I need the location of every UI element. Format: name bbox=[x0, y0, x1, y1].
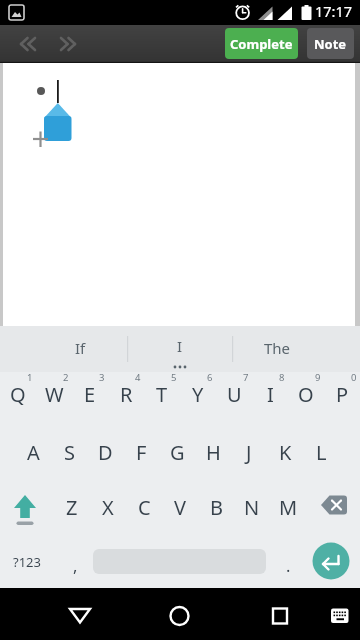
button[interactable]: , bbox=[45, 550, 105, 580]
button[interactable]: ?123 bbox=[0, 547, 57, 577]
staticText: The bbox=[264, 338, 291, 358]
button[interactable]: M bbox=[258, 492, 318, 522]
button[interactable]: J bbox=[219, 437, 279, 467]
button[interactable] bbox=[160, 594, 200, 634]
button[interactable]: Z bbox=[42, 492, 102, 522]
staticText: 8 bbox=[279, 371, 285, 384]
button[interactable]: F bbox=[111, 437, 171, 467]
staticText: S bbox=[64, 439, 75, 466]
button[interactable] bbox=[315, 489, 355, 529]
staticText: U bbox=[227, 381, 242, 408]
button[interactable] bbox=[260, 594, 300, 634]
button[interactable]: N bbox=[222, 492, 282, 522]
staticText: X bbox=[102, 494, 114, 521]
staticText: 0 bbox=[351, 371, 357, 384]
staticText: G bbox=[170, 439, 185, 466]
button[interactable]: B bbox=[186, 492, 246, 522]
staticText: C bbox=[138, 494, 151, 521]
staticText: I bbox=[267, 381, 274, 408]
button[interactable]: I bbox=[150, 331, 210, 361]
button[interactable]: S bbox=[39, 437, 99, 467]
button[interactable]: E bbox=[60, 379, 120, 409]
staticText: A bbox=[27, 439, 40, 466]
staticText: P bbox=[336, 381, 349, 408]
button[interactable]: L bbox=[291, 437, 351, 467]
staticText: I bbox=[177, 336, 183, 356]
button[interactable]: C bbox=[114, 492, 174, 522]
staticText: 7 bbox=[243, 371, 249, 384]
staticText: , bbox=[73, 554, 78, 576]
button[interactable]: Q bbox=[0, 379, 48, 409]
button[interactable]: G bbox=[147, 437, 207, 467]
button[interactable]: W bbox=[24, 379, 84, 409]
staticText: . bbox=[286, 554, 291, 576]
staticText: If bbox=[75, 338, 86, 358]
staticText: Y bbox=[192, 381, 204, 408]
staticText: B bbox=[210, 494, 223, 521]
staticText: 6 bbox=[207, 371, 213, 384]
staticText: V bbox=[174, 494, 186, 521]
button[interactable]: H bbox=[183, 437, 243, 467]
staticText: Z bbox=[66, 494, 78, 521]
button[interactable] bbox=[325, 594, 355, 634]
staticText: Note bbox=[314, 35, 347, 53]
button[interactable]: A bbox=[3, 437, 63, 467]
button[interactable]: O bbox=[276, 379, 336, 409]
button[interactable]: Note bbox=[307, 28, 354, 59]
staticText: L bbox=[316, 439, 327, 466]
button[interactable]: X bbox=[78, 492, 138, 522]
staticText: 9 bbox=[315, 371, 321, 384]
button[interactable] bbox=[8, 489, 48, 529]
staticText: T bbox=[156, 381, 168, 408]
staticText: 3 bbox=[99, 371, 105, 384]
staticText: N bbox=[244, 494, 260, 521]
staticText: H bbox=[206, 439, 221, 466]
staticText: Q bbox=[10, 381, 26, 408]
staticText: J bbox=[246, 439, 252, 466]
staticText: ?123 bbox=[13, 553, 41, 571]
staticText: K bbox=[279, 439, 292, 466]
button[interactable]: U bbox=[204, 379, 264, 409]
button[interactable]: . bbox=[258, 550, 318, 580]
staticText: 17:17 bbox=[315, 1, 353, 21]
button[interactable]: Y bbox=[168, 379, 228, 409]
button[interactable]: V bbox=[150, 492, 210, 522]
button[interactable]: P bbox=[312, 379, 360, 409]
button[interactable]: T bbox=[132, 379, 192, 409]
staticText: O bbox=[298, 381, 314, 408]
button[interactable]: If bbox=[50, 333, 110, 363]
staticText: D bbox=[98, 439, 113, 466]
staticText: 1 bbox=[27, 371, 33, 384]
button[interactable]: K bbox=[255, 437, 315, 467]
staticText: F bbox=[136, 439, 147, 466]
staticText: Complete bbox=[230, 35, 293, 53]
staticText: R bbox=[120, 381, 133, 408]
staticText: M bbox=[279, 494, 298, 521]
button[interactable] bbox=[60, 594, 100, 634]
staticText: 2 bbox=[63, 371, 69, 384]
button[interactable]: Complete bbox=[225, 28, 298, 59]
staticText: 4 bbox=[135, 371, 141, 384]
button[interactable]: The bbox=[247, 333, 307, 363]
button[interactable]: R bbox=[96, 379, 156, 409]
button[interactable]: I bbox=[240, 379, 300, 409]
button[interactable]: D bbox=[75, 437, 135, 467]
staticText: E bbox=[84, 381, 96, 408]
staticText: W bbox=[45, 381, 64, 408]
staticText: 5 bbox=[171, 371, 177, 384]
button[interactable] bbox=[311, 541, 351, 581]
